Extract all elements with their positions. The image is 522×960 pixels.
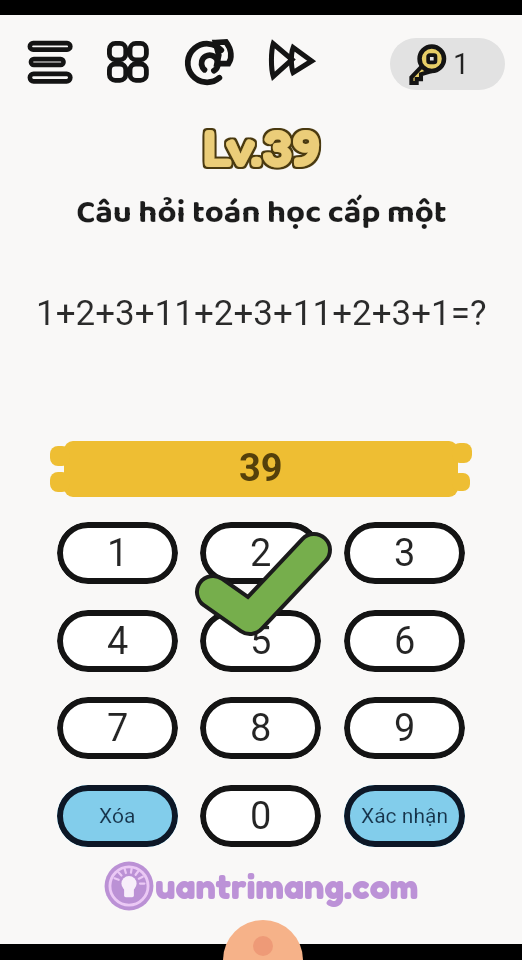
staticText: 9	[394, 706, 416, 751]
button[interactable]: 8	[200, 697, 321, 759]
button[interactable]: Xác nhận	[344, 785, 465, 847]
button[interactable]: 3	[344, 522, 465, 584]
staticText: Lv.39	[204, 117, 322, 181]
button[interactable]: Restart	[183, 33, 239, 89]
button[interactable]: 1	[57, 522, 178, 584]
button[interactable]: Xóa	[57, 785, 178, 847]
staticText: Lv.39	[200, 115, 318, 179]
staticText: 2	[250, 531, 272, 576]
staticText: 3	[394, 531, 416, 576]
button[interactable]: 7	[57, 697, 178, 759]
staticText: 8	[250, 706, 272, 751]
staticText: 1	[453, 47, 470, 81]
button[interactable]: Hints	[22, 35, 76, 89]
button[interactable]: 2	[200, 522, 321, 584]
staticText: 5	[250, 619, 272, 664]
staticText: Lv.39	[200, 117, 318, 181]
button[interactable]: 6	[344, 610, 465, 672]
button[interactable]: 9	[344, 697, 465, 759]
button[interactable]: Skip	[263, 33, 319, 89]
staticText: 4	[107, 619, 129, 664]
staticText: Xóa	[99, 804, 136, 829]
staticText: Lv.39	[202, 117, 320, 181]
staticText: 6	[394, 619, 416, 664]
staticText: Xác nhận	[361, 804, 448, 829]
staticText: uantrimang.com	[155, 864, 419, 908]
button[interactable]: 4	[57, 610, 178, 672]
staticText: Lv.39	[204, 115, 322, 179]
staticText: Lv.39	[200, 113, 318, 177]
button[interactable]: 5	[200, 610, 321, 672]
button[interactable]: Keys: 1	[390, 38, 505, 90]
staticText: 39	[239, 446, 283, 491]
staticText: 0	[250, 794, 272, 839]
staticText: Lv.39	[204, 113, 322, 177]
staticText: Câu hỏi toán học cấp một	[76, 186, 447, 239]
staticText: Lv.39	[202, 115, 320, 179]
staticText: Lv.39	[202, 113, 320, 177]
staticText: 7	[107, 706, 129, 751]
button[interactable]: 0	[200, 785, 321, 847]
staticText: 1	[107, 531, 129, 576]
button[interactable]: Levels	[101, 35, 155, 89]
staticText: 1+2+3+11+2+3+11+2+3+1=?	[36, 293, 487, 334]
